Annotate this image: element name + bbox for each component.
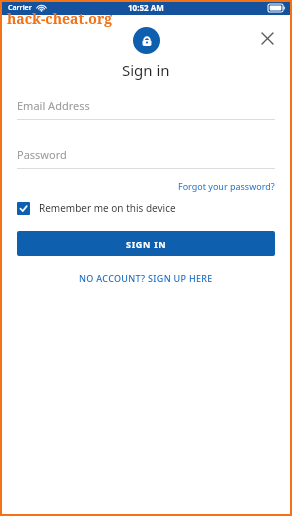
staticText: hack-cheat.org bbox=[7, 9, 113, 28]
staticText: Password bbox=[17, 147, 67, 162]
button[interactable]: Forgot your password? bbox=[178, 179, 275, 193]
staticText: 10:52 AM bbox=[128, 2, 164, 13]
staticText: Email Address bbox=[17, 98, 90, 113]
button[interactable]: Password bbox=[17, 147, 275, 169]
button[interactable]: Close bbox=[256, 27, 278, 49]
staticText: NO ACCOUNT? SIGN UP HERE bbox=[79, 272, 213, 284]
staticText: Sign in bbox=[122, 60, 170, 80]
staticText: Remember me on this device bbox=[39, 201, 176, 215]
staticText: Carrier bbox=[8, 3, 32, 13]
button[interactable]: NO ACCOUNT? SIGN UP HERE bbox=[73, 270, 219, 286]
staticText: Forgot your password? bbox=[178, 180, 275, 192]
button[interactable]: SIGN IN bbox=[17, 231, 275, 256]
button[interactable]: Email Address bbox=[17, 98, 275, 120]
staticText: SIGN IN bbox=[126, 238, 167, 250]
button[interactable]: Remember me on this device bbox=[17, 199, 275, 217]
